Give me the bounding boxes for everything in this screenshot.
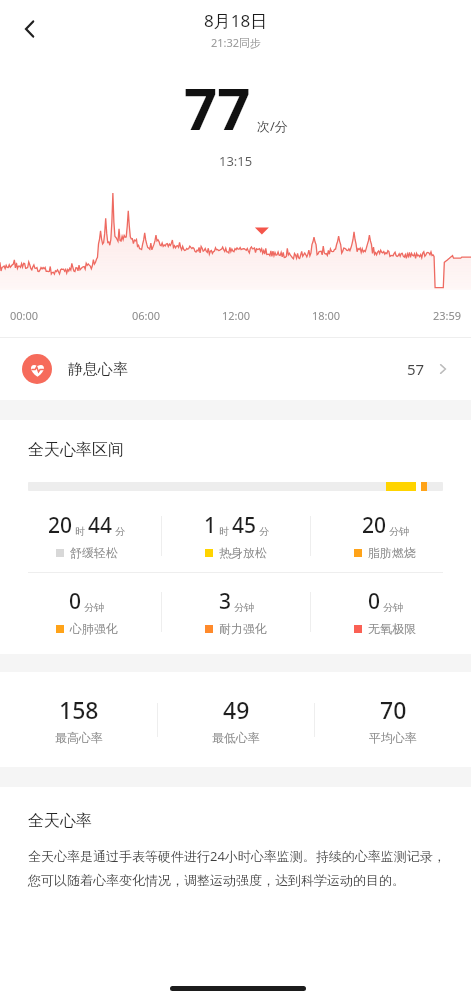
button[interactable]: 20 <box>12 511 161 560</box>
staticText: 无氧极限 <box>368 621 416 636</box>
button[interactable]: 158 <box>0 694 157 745</box>
staticText: 23:59 <box>371 308 461 323</box>
staticText: 次/分 <box>257 117 288 135</box>
staticText: 44 <box>88 511 113 540</box>
staticText: 49 <box>223 694 250 725</box>
staticText: 分 <box>115 525 125 538</box>
staticText: 静息心率 <box>68 360 128 379</box>
staticText: 00:00 <box>10 308 101 323</box>
staticText: 06:00 <box>101 308 191 323</box>
staticText: 20 <box>48 511 73 540</box>
staticText: 耐力强化 <box>219 621 267 636</box>
staticText: 时 <box>219 525 229 538</box>
button[interactable]: 70 <box>315 694 471 745</box>
button[interactable]: 3 <box>162 587 310 636</box>
staticText: 热身放松 <box>219 545 267 560</box>
staticText: 0 <box>368 587 381 616</box>
staticText: 8月18日 <box>204 9 268 32</box>
staticText: 分钟 <box>84 601 104 614</box>
staticText: 分钟 <box>389 525 409 538</box>
staticText: 分钟 <box>234 601 254 614</box>
staticText: 13:15 <box>219 152 253 170</box>
staticText: 全天心率 <box>28 811 92 831</box>
staticText: 分钟 <box>383 601 403 614</box>
staticText: 158 <box>59 694 99 725</box>
staticText: 3 <box>219 587 232 616</box>
button[interactable]: 20 <box>311 511 459 560</box>
staticText: 12:00 <box>191 308 281 323</box>
staticText: 0 <box>69 587 82 616</box>
staticText: 全天心率区间 <box>28 440 124 460</box>
staticText: 分 <box>259 525 269 538</box>
staticText: 全天心率是通过手表等硬件进行24小时心率监测。持续的心率监测记录，您可以随着心率… <box>28 847 447 889</box>
staticText: 1 <box>204 511 217 540</box>
staticText: 21:32同步 <box>211 35 262 50</box>
button[interactable]: 0 <box>12 587 161 636</box>
staticText: 57 <box>407 359 425 379</box>
staticText: 脂肪燃烧 <box>368 545 416 560</box>
staticText: 45 <box>232 511 257 540</box>
staticText: 最高心率 <box>55 730 103 745</box>
button[interactable]: 49 <box>158 694 314 745</box>
staticText: 最低心率 <box>212 730 260 745</box>
staticText: 平均心率 <box>369 730 417 745</box>
staticText: 心肺强化 <box>70 621 118 636</box>
staticText: 20 <box>362 511 387 540</box>
button[interactable]: 0 <box>311 587 459 636</box>
button[interactable]: Back <box>6 5 54 53</box>
staticText: 舒缓轻松 <box>70 545 118 560</box>
staticText: 77 <box>184 68 251 147</box>
staticText: 时 <box>75 525 85 538</box>
button[interactable]: 静息心率 <box>0 338 471 400</box>
button[interactable]: 1 <box>162 511 310 560</box>
staticText: 70 <box>380 694 407 725</box>
staticText: 18:00 <box>281 308 371 323</box>
